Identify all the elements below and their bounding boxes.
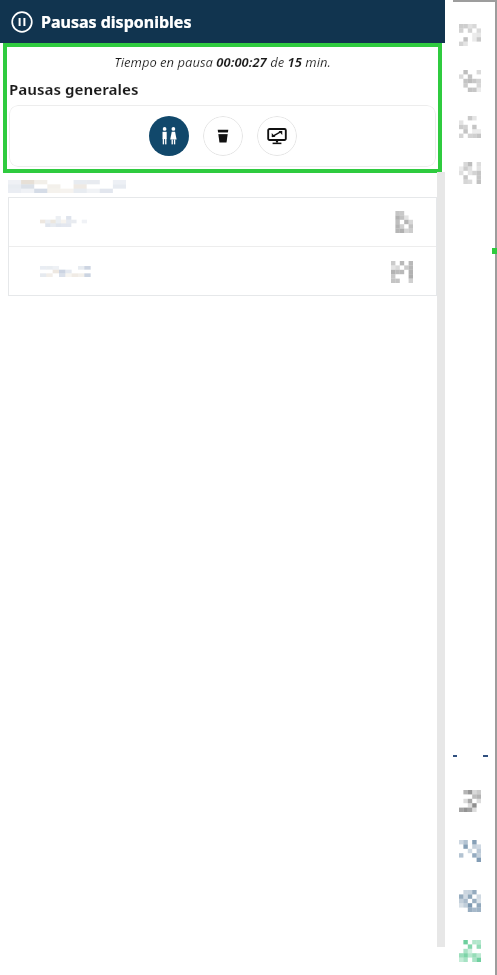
button[interactable]: Herramienta 3	[459, 116, 481, 138]
button[interactable]: Acción	[391, 211, 413, 233]
button[interactable]: Chat	[459, 940, 481, 962]
staticText: Pausas disponibles	[41, 11, 192, 33]
button[interactable]: Acción	[8, 197, 437, 246]
staticText: Pausas generales	[9, 79, 139, 99]
staticText: Tiempo en pausa 00:00:27 de 15 min.	[9, 53, 436, 71]
button[interactable]: Pausa de baño	[149, 116, 189, 156]
button[interactable]: Configuración	[459, 790, 481, 812]
button[interactable]: Acción	[8, 247, 437, 296]
button[interactable]: Acción	[391, 261, 413, 283]
button[interactable]: Aplicación	[459, 840, 481, 862]
button[interactable]: Pausa de pantalla	[257, 116, 297, 156]
button[interactable]: Teléfono	[459, 890, 481, 912]
button[interactable]: Herramienta 4	[459, 162, 481, 184]
button[interactable]: Herramienta 1	[459, 24, 481, 46]
button[interactable]: Pausa de bebida	[203, 116, 243, 156]
button[interactable]: Herramienta 2	[459, 70, 481, 92]
